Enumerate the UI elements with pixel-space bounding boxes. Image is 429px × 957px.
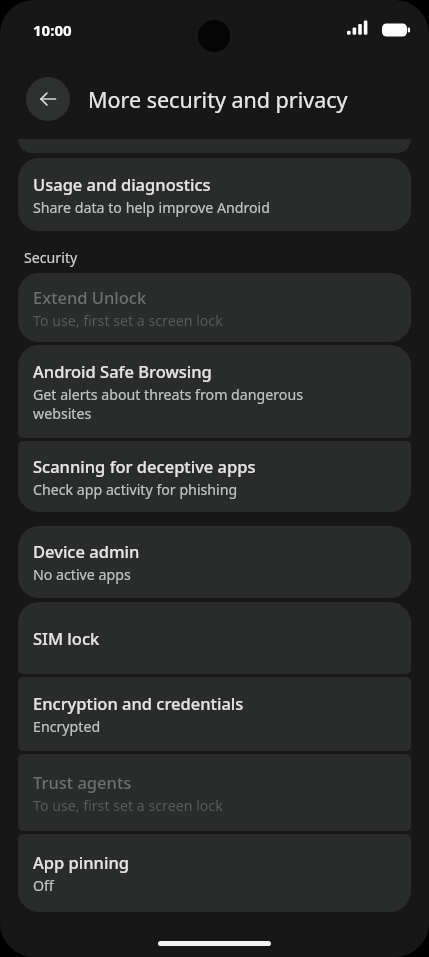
staticText: To use, first set a screen lock — [33, 311, 223, 330]
button[interactable]: Encryption and credentials — [18, 677, 411, 751]
staticText: Trust agents — [33, 771, 132, 793]
staticText: Usage and diagnostics — [33, 173, 211, 195]
staticText: Device admin — [33, 540, 140, 562]
button[interactable]: Android Safe Browsing — [18, 345, 411, 438]
staticText: Security — [24, 248, 78, 267]
button[interactable]: SIM lock — [18, 602, 411, 674]
staticText: Encryption and credentials — [33, 692, 244, 714]
staticText: To use, first set a screen lock — [33, 796, 223, 815]
staticText: Check app activity for phishing — [33, 480, 238, 499]
staticText: Share data to help improve Android — [33, 198, 271, 217]
staticText: App pinning — [33, 851, 129, 873]
button[interactable]: Back — [26, 77, 70, 121]
staticText: Scanning for deceptive apps — [33, 455, 256, 477]
button[interactable]: Extend Unlock — [18, 273, 411, 342]
staticText: Off — [33, 876, 54, 895]
staticText: SIM lock — [33, 627, 100, 649]
staticText: Extend Unlock — [33, 286, 147, 308]
button[interactable]: Usage and diagnostics — [18, 158, 411, 231]
button[interactable]: Device admin — [18, 526, 411, 598]
staticText: Get alerts about threats from dangerous … — [33, 385, 304, 423]
staticText: No active apps — [33, 565, 131, 584]
button[interactable]: Scanning for deceptive apps — [18, 441, 411, 512]
staticText: 10:00 — [33, 20, 72, 40]
staticText: Android Safe Browsing — [33, 360, 212, 382]
button[interactable]: Trust agents — [18, 754, 411, 831]
staticText: Encrypted — [33, 717, 101, 736]
button[interactable]: App pinning — [18, 834, 411, 912]
staticText: More security and privacy — [88, 85, 348, 114]
